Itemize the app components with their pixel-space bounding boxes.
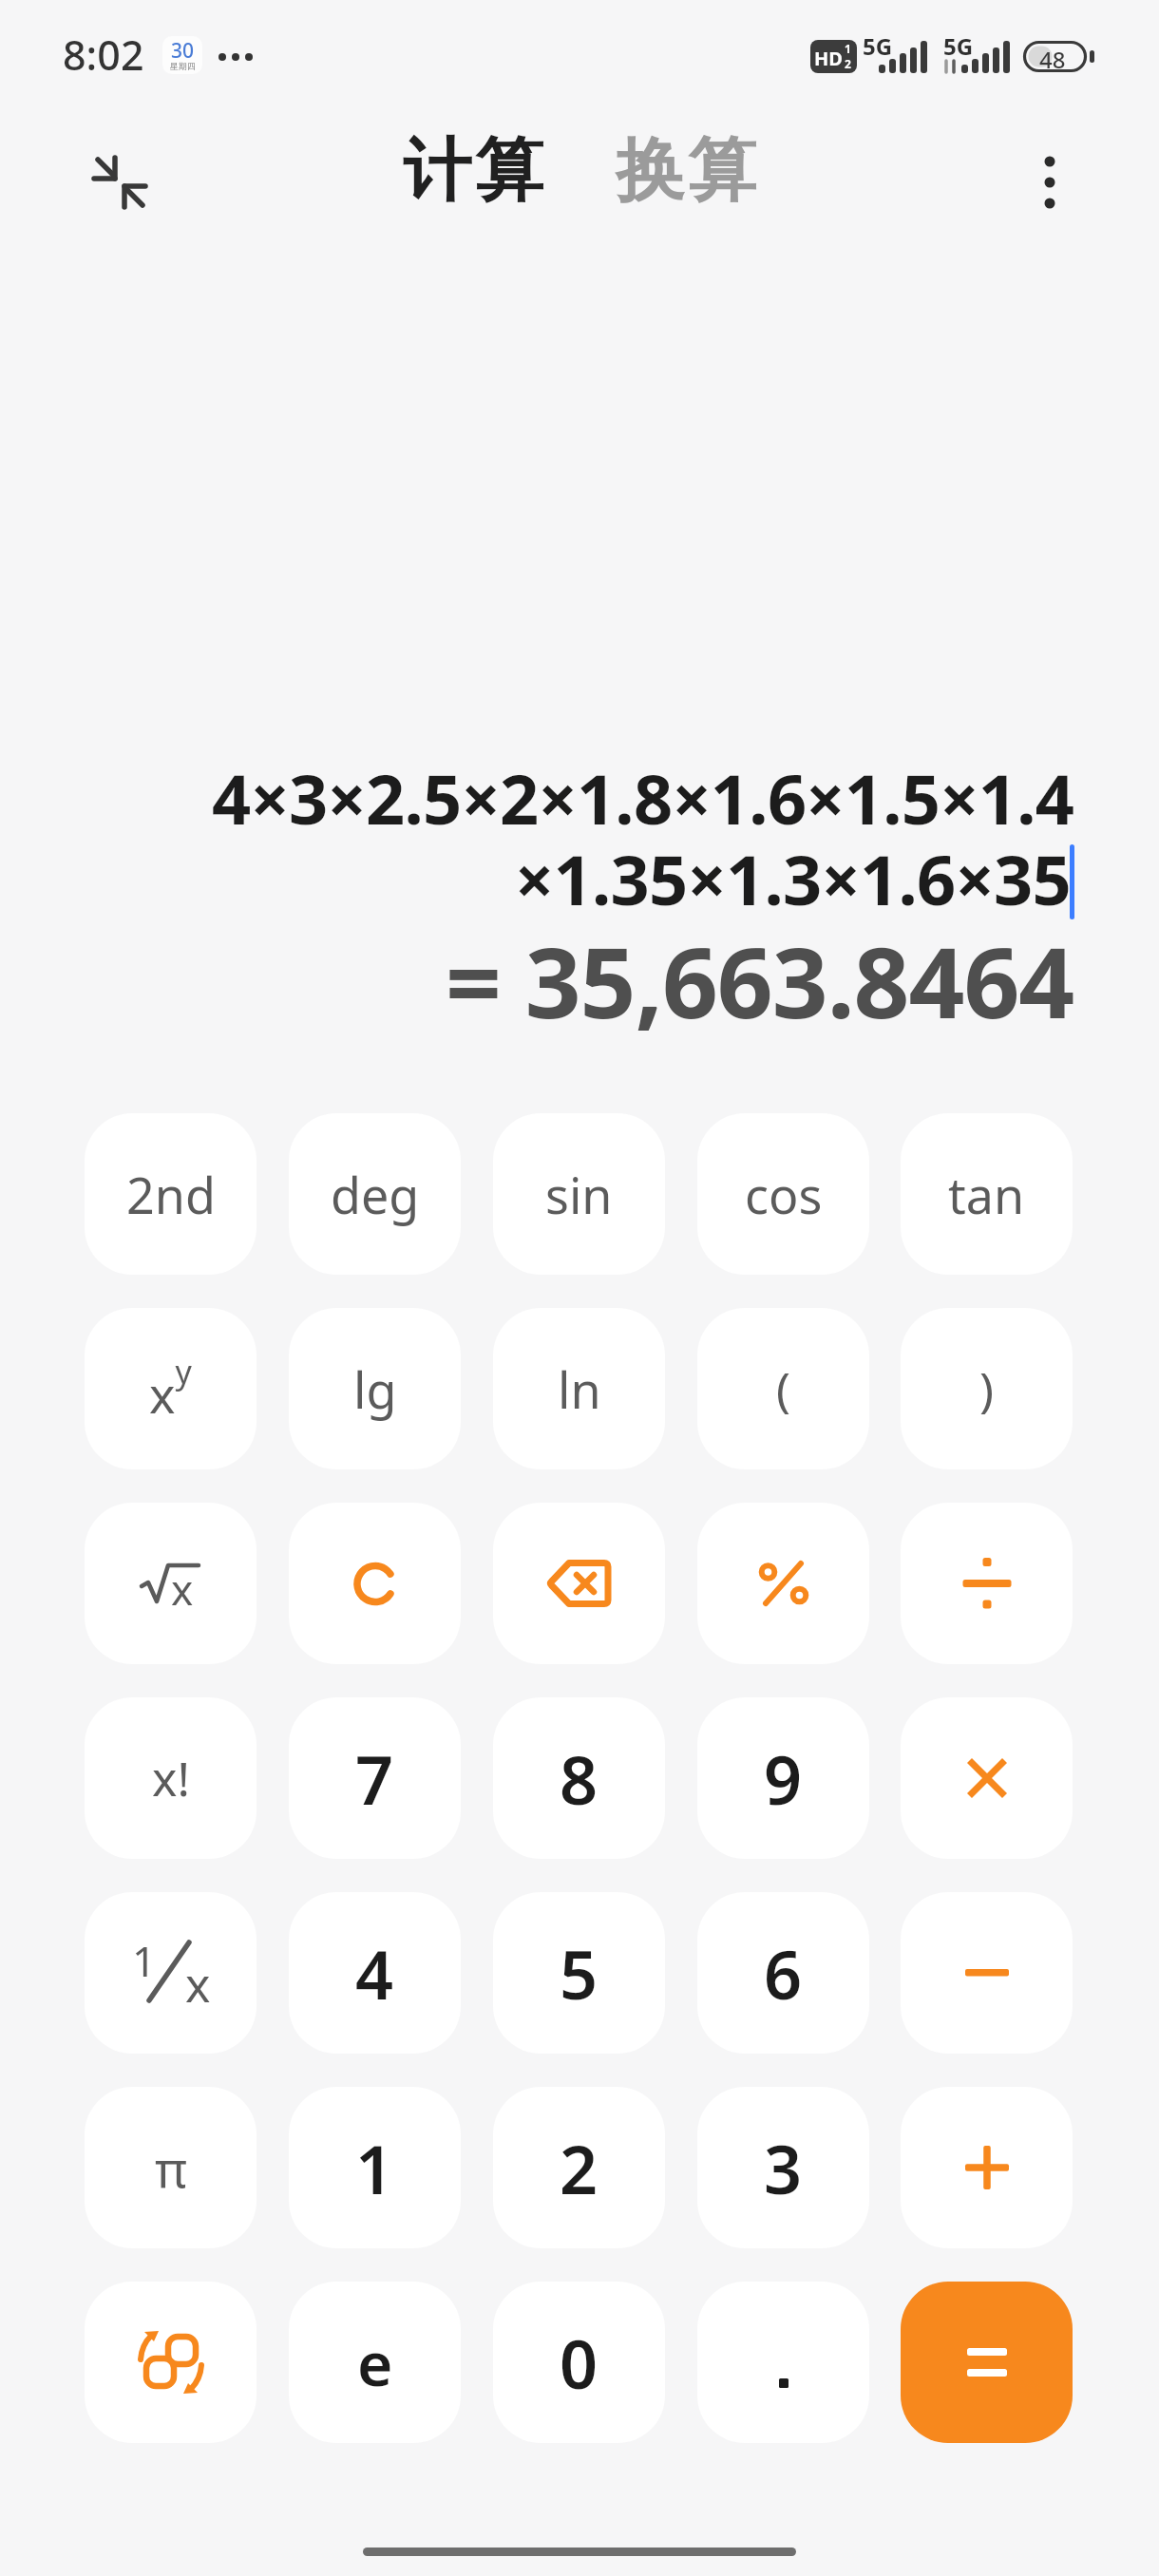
staticText: 3	[764, 2123, 803, 2213]
button[interactable]: deg	[289, 1113, 461, 1275]
staticText: 计算	[401, 128, 545, 215]
button[interactable]: 计算	[401, 128, 545, 215]
staticText: (	[776, 1356, 790, 1421]
staticText: 5G	[863, 30, 893, 62]
staticText: sin	[545, 1161, 613, 1228]
staticText: e	[357, 2321, 393, 2404]
staticText: ×1.35×1.3×1.6×35	[515, 832, 1071, 925]
staticText: x!	[152, 1746, 190, 1810]
staticText: HD	[814, 46, 843, 71]
button[interactable]: cos	[697, 1113, 869, 1275]
button[interactable]	[493, 1503, 665, 1664]
button[interactable]: x!	[85, 1697, 256, 1859]
button[interactable]: x	[85, 1503, 256, 1664]
button[interactable]: 2	[493, 2087, 665, 2248]
staticText: cos	[745, 1161, 823, 1228]
button[interactable]: 3	[697, 2087, 869, 2248]
staticText: 8:02	[63, 27, 144, 83]
button[interactable]	[697, 1503, 869, 1664]
button[interactable]: 4	[289, 1892, 461, 2054]
button[interactable]	[697, 2282, 869, 2443]
button[interactable]: 换算	[614, 128, 758, 215]
staticText: 1	[132, 1932, 157, 1989]
button[interactable]: π	[85, 2087, 256, 2248]
staticText: 4	[355, 1928, 394, 2018]
staticText: 7	[355, 1733, 394, 1824]
staticText: 6	[764, 1928, 803, 2018]
button[interactable]: 8	[493, 1697, 665, 1859]
staticText: 星期四	[170, 61, 196, 71]
staticText: 1	[355, 2123, 394, 2213]
button[interactable]	[901, 1697, 1073, 1859]
staticText: 5	[560, 1928, 598, 2018]
staticText: 48	[1039, 44, 1066, 75]
staticText: ln	[558, 1355, 601, 1423]
button[interactable]: 1	[85, 1892, 256, 2054]
staticText: 8	[560, 1733, 598, 1824]
staticText: 9	[764, 1733, 803, 1824]
button[interactable]: )	[901, 1308, 1073, 1469]
staticText: xy	[149, 1350, 192, 1428]
staticText: 换算	[614, 128, 758, 215]
button[interactable]	[85, 2282, 256, 2443]
staticText: x	[185, 1952, 211, 2013]
staticText: deg	[331, 1161, 420, 1228]
button[interactable]: 1	[289, 2087, 461, 2248]
button[interactable]	[901, 2087, 1073, 2248]
button[interactable]: 2nd	[85, 1113, 256, 1275]
staticText: 2	[845, 56, 851, 71]
staticText: 2	[560, 2123, 598, 2213]
staticText: tan	[948, 1161, 1025, 1228]
button[interactable]: xy	[85, 1308, 256, 1469]
button[interactable]: sin	[493, 1113, 665, 1275]
button[interactable]: ln	[493, 1308, 665, 1469]
button[interactable]: (	[697, 1308, 869, 1469]
button[interactable]: tan	[901, 1113, 1073, 1275]
staticText: x	[171, 1561, 194, 1610]
button[interactable]: 5	[493, 1892, 665, 2054]
button[interactable]	[901, 1892, 1073, 2054]
button[interactable]: 0	[493, 2282, 665, 2443]
button[interactable]: lg	[289, 1308, 461, 1469]
button[interactable]	[1026, 142, 1073, 228]
button[interactable]	[901, 1503, 1073, 1664]
staticText: 2nd	[126, 1161, 216, 1228]
button[interactable]	[901, 2282, 1073, 2443]
staticText: 5G	[943, 30, 974, 62]
button[interactable]: 9	[697, 1697, 869, 1859]
staticText: )	[979, 1356, 994, 1421]
button[interactable]: e	[289, 2282, 461, 2443]
button[interactable]	[87, 150, 152, 215]
staticText: = 35,663.8464	[446, 914, 1074, 1047]
staticText: 0	[560, 2318, 598, 2408]
button[interactable]: 6	[697, 1892, 869, 2054]
staticText: lg	[353, 1355, 397, 1423]
staticText: 1	[845, 41, 851, 56]
staticText: π	[155, 2134, 187, 2202]
staticText: 30	[171, 37, 195, 65]
button[interactable]	[289, 1503, 461, 1664]
staticText: 4×3×2.5×2×1.8×1.6×1.5×1.4	[212, 751, 1074, 844]
button[interactable]: 7	[289, 1697, 461, 1859]
